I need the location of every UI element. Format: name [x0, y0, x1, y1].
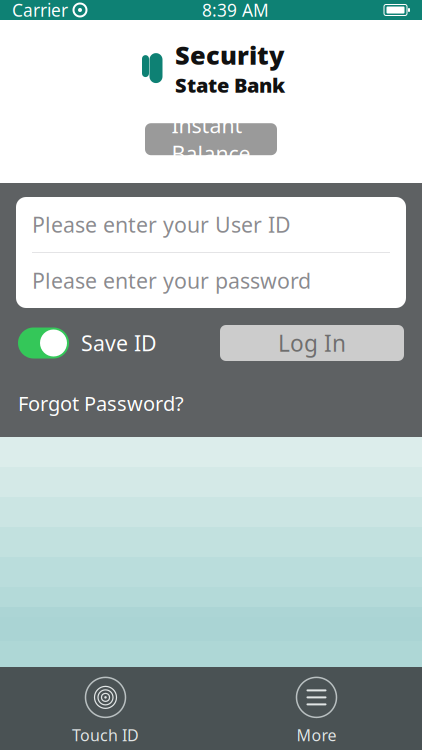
staticText: Forgot Password? — [18, 390, 184, 417]
button[interactable]: Log In — [220, 325, 404, 361]
button[interactable]: Please enter your password — [16, 253, 406, 308]
staticText: Please enter your password — [32, 266, 311, 295]
staticText: Carrier — [12, 0, 68, 21]
staticText: Security — [175, 38, 284, 72]
staticText: Log In — [278, 328, 346, 358]
button[interactable]: More — [261, 677, 371, 746]
staticText: Please enter your User ID — [32, 210, 291, 239]
staticText: State Bank — [175, 72, 285, 98]
button[interactable]: Touch ID — [50, 677, 160, 746]
staticText: Touch ID — [72, 724, 139, 746]
staticText: More — [296, 724, 336, 746]
staticText: Instant Balance — [171, 111, 250, 168]
button[interactable]: Save ID — [18, 327, 157, 358]
button[interactable]: Instant Balance — [145, 123, 277, 155]
staticText: Save ID — [81, 329, 157, 357]
button[interactable]: Forgot Password? — [18, 390, 184, 417]
staticText: 8:39 AM — [202, 0, 269, 21]
button[interactable]: Please enter your User ID — [16, 197, 406, 252]
